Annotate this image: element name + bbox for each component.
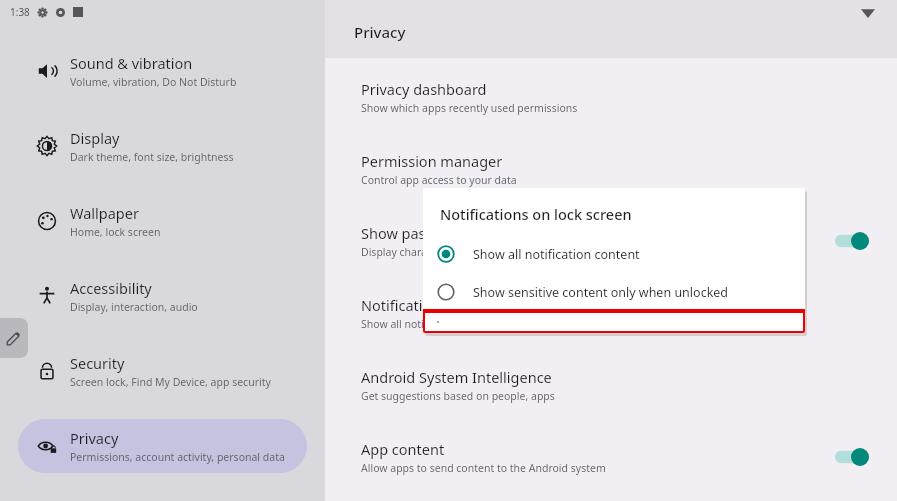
other: Toggle: [835, 231, 869, 251]
button[interactable]: Sound & vibration: [18, 44, 307, 98]
staticText: Display, interaction, audio: [70, 300, 198, 314]
button[interactable]: Android System Intelligence: [325, 358, 897, 412]
button[interactable]: Permission manager: [325, 142, 897, 196]
staticText: Permission manager: [361, 151, 503, 171]
button[interactable]: Toggle: [835, 447, 869, 467]
staticText: Show sensitive content only when unlocke…: [473, 284, 729, 301]
staticText: Security: [70, 353, 125, 373]
staticText: Control app access to your data: [361, 173, 517, 187]
button[interactable]: Accessibility: [18, 269, 307, 323]
button[interactable]: Edit: [0, 318, 28, 358]
button[interactable]: Toggle: [835, 231, 869, 251]
staticText: Show all notification content: [473, 246, 640, 263]
staticText: Permissions, account activity, personal …: [70, 450, 285, 464]
staticText: Android System Intelligence: [361, 367, 552, 387]
button[interactable]: Notifications on lock screen: [325, 286, 897, 340]
button[interactable]: Wallpaper: [18, 194, 307, 248]
button[interactable]: Display: [18, 119, 307, 173]
staticText: Home, lock screen: [70, 225, 161, 239]
staticText: Show passwords: [361, 223, 475, 243]
button[interactable]: Don't show notifications at all: [423, 311, 805, 333]
staticText: Display characters briefly as you type: [361, 245, 544, 259]
staticText: Wallpaper: [70, 203, 139, 223]
button[interactable]: Security: [18, 344, 307, 398]
staticText: App content: [361, 439, 445, 459]
button[interactable]: Show passwords: [325, 214, 897, 268]
staticText: Accessibility: [70, 278, 152, 298]
other: Toggle: [835, 447, 869, 467]
button[interactable]: Privacy dashboard: [325, 70, 897, 124]
staticText: Sound & vibration: [70, 53, 193, 73]
button[interactable]: App content: [325, 430, 897, 484]
staticText: Allow apps to send content to the Androi…: [361, 461, 606, 475]
button[interactable]: Privacy: [18, 419, 307, 473]
staticText: Privacy: [70, 428, 119, 448]
staticText: Privacy dashboard: [361, 79, 487, 99]
button[interactable]: Show sensitive content only when unlocke…: [423, 273, 805, 311]
staticText: Screen lock, Find My Device, app securit…: [70, 375, 271, 389]
staticText: Display: [70, 128, 120, 148]
button[interactable]: Show all notification content: [423, 235, 805, 273]
staticText: Notifications on lock screen: [361, 295, 549, 315]
staticText: 1:38: [10, 5, 30, 19]
staticText: Show which apps recently used permission…: [361, 101, 578, 115]
staticText: Volume, vibration, Do Not Disturb: [70, 75, 237, 89]
staticText: Notifications on lock screen: [440, 204, 632, 224]
staticText: Dark theme, font size, brightness: [70, 150, 234, 164]
staticText: Privacy: [354, 22, 406, 42]
staticText: Get suggestions based on people, apps: [361, 389, 555, 403]
staticText: Show all notification content: [361, 317, 501, 331]
